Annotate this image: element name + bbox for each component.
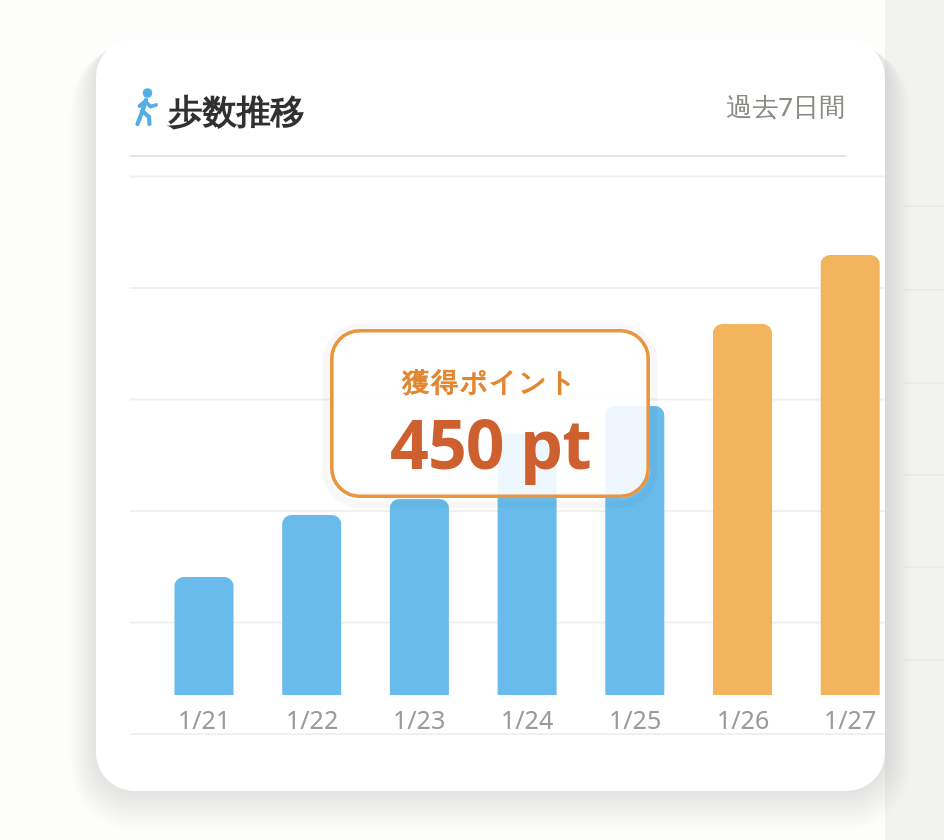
staticText: 1/21: [178, 702, 231, 736]
staticText: 獲得ポイント: [402, 366, 578, 400]
staticText: 過去7日間: [726, 88, 845, 124]
staticText: 450 pt: [390, 396, 591, 489]
staticText: 1/23: [393, 702, 446, 736]
staticText: 歩数推移: [168, 91, 304, 134]
button[interactable]: 過去7日間: [645, 88, 845, 124]
staticText: 1/24: [501, 702, 554, 736]
button[interactable]: 獲得ポイント: [330, 329, 650, 498]
staticText: 1/25: [609, 702, 662, 736]
staticText: 1/26: [717, 702, 770, 736]
staticText: 1/22: [286, 702, 339, 736]
staticText: 1/27: [824, 702, 877, 736]
